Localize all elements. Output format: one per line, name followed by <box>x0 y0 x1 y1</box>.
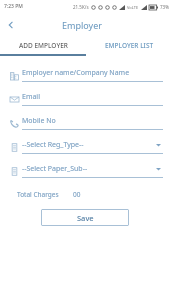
staticText: --Select Paper_Sub-- <box>22 164 156 174</box>
button[interactable]: Save <box>41 209 129 226</box>
staticText: 73% <box>160 4 169 10</box>
staticText: Save <box>77 213 94 223</box>
button[interactable]: Back <box>0 14 22 36</box>
staticText: VoLTE <box>127 5 139 10</box>
staticText: 21.5K/s <box>73 4 89 10</box>
staticText: 7:23 PM <box>4 3 23 10</box>
staticText: Total Charges <box>17 190 59 199</box>
staticText: 00 <box>73 190 81 199</box>
button[interactable]: --Select Paper_Sub-- <box>7 164 163 178</box>
staticText: --Select Reg_Type-- <box>22 140 156 150</box>
staticText: Employer name/Company Name <box>22 68 163 78</box>
staticText: ADD EMPLOYER <box>19 41 68 50</box>
button[interactable]: ADD EMPLOYER <box>0 36 86 54</box>
staticText: Email <box>22 92 163 102</box>
button[interactable]: Email <box>7 92 163 106</box>
staticText: Employer <box>62 19 102 31</box>
button[interactable]: --Select Reg_Type-- <box>7 140 163 154</box>
staticText: EMPLOYER LIST <box>105 41 154 50</box>
button[interactable]: EMPLOYER LIST <box>86 36 172 54</box>
staticText: Mobile No <box>22 116 163 126</box>
button[interactable]: Mobile No <box>7 116 163 130</box>
button[interactable]: Employer name/Company Name <box>7 68 163 82</box>
